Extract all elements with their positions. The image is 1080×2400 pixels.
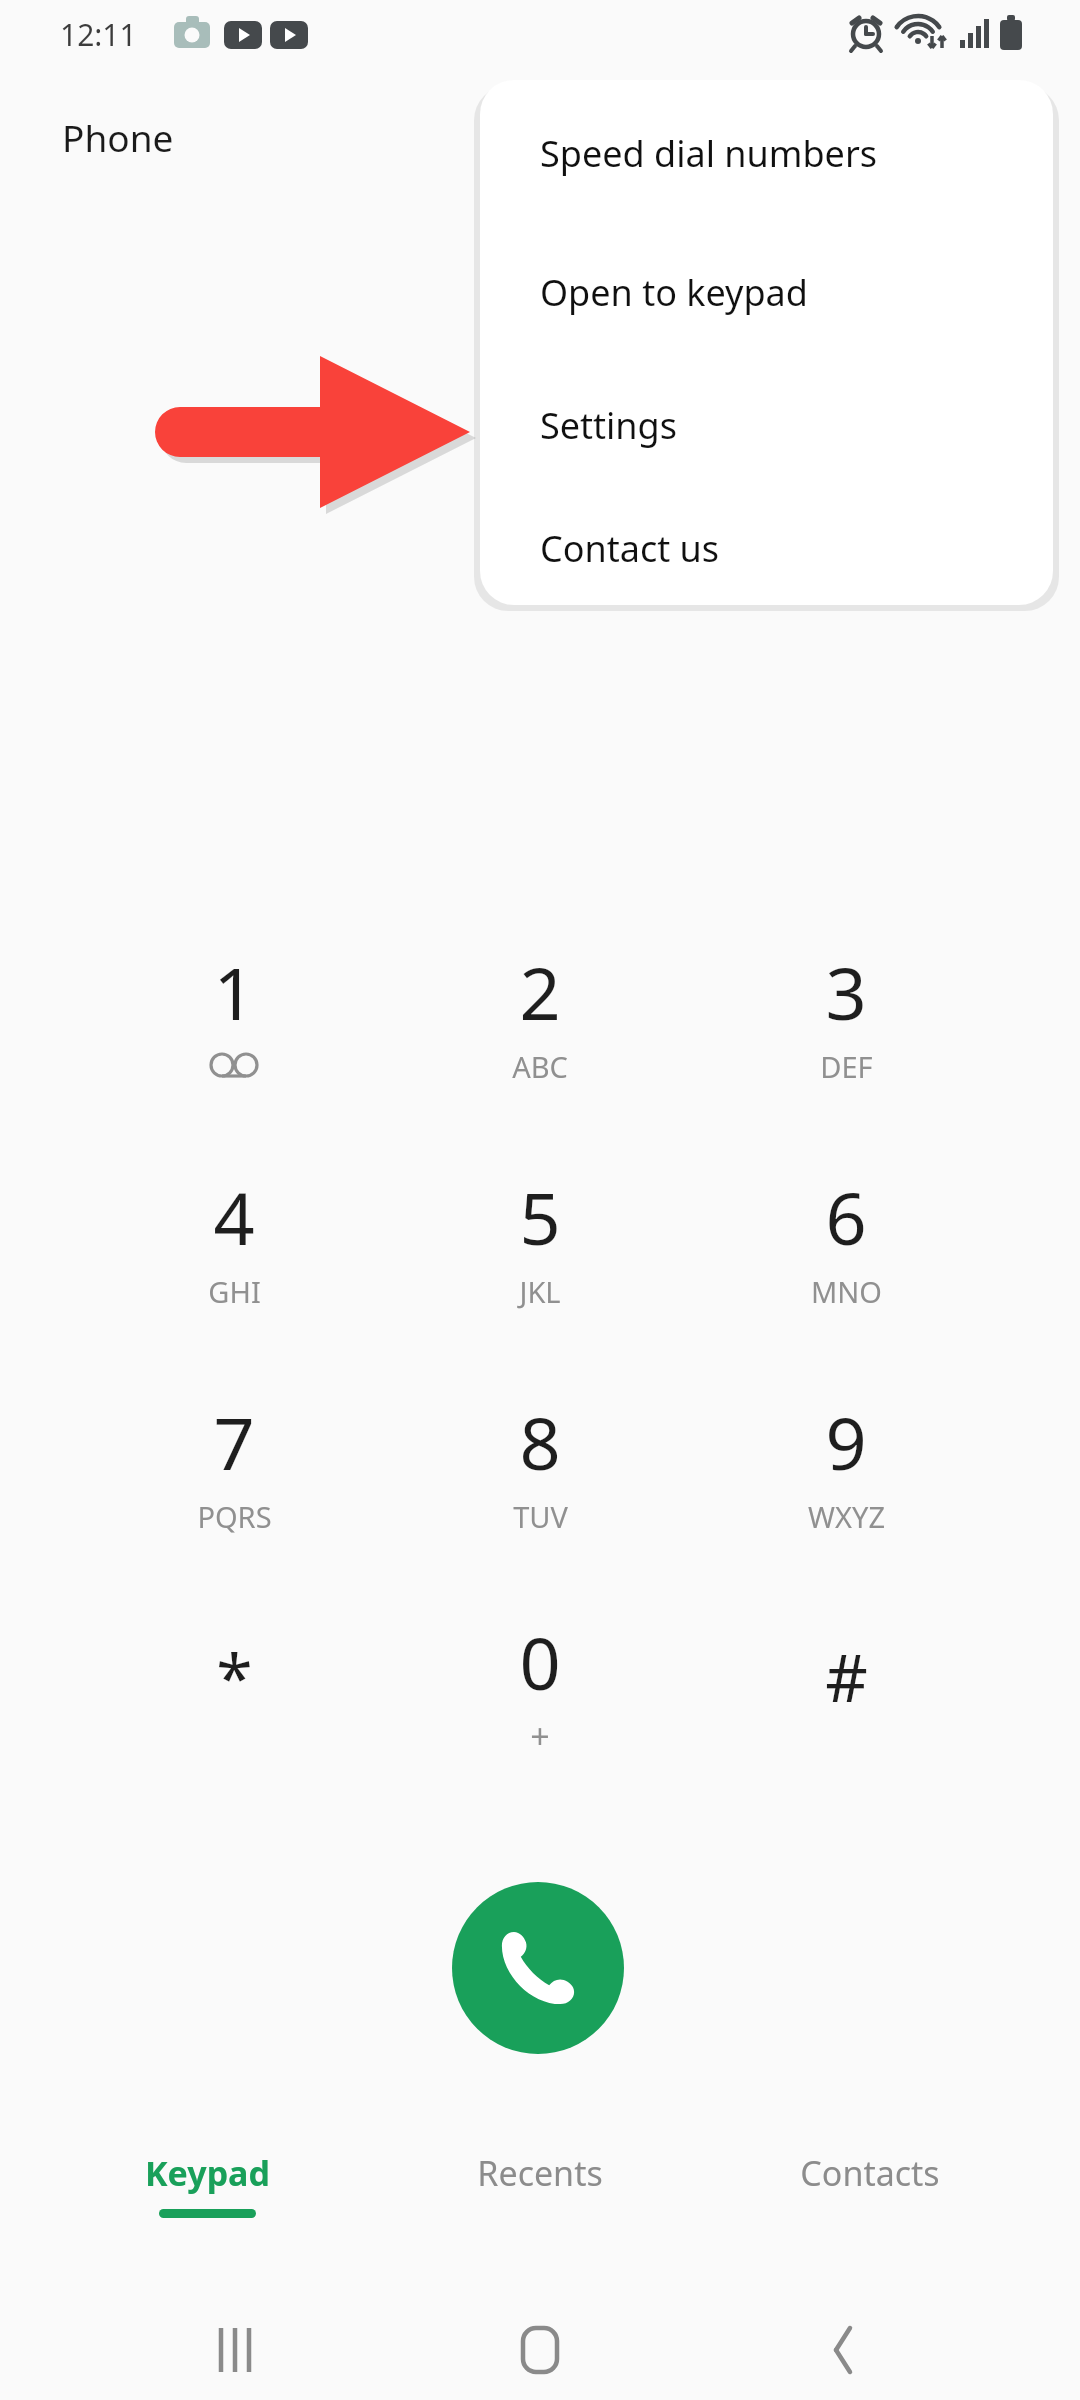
staticText: Phone xyxy=(62,112,174,162)
button[interactable]: Back xyxy=(765,2300,925,2400)
staticText: DEF xyxy=(820,1047,873,1086)
staticText: TUV xyxy=(513,1497,568,1536)
button[interactable]: Call xyxy=(452,1882,624,2054)
staticText: 3 xyxy=(825,943,867,1041)
button[interactable]: Open to keypad xyxy=(480,226,1053,359)
staticText: 2 xyxy=(519,943,561,1041)
button[interactable]: 1 xyxy=(124,943,344,1118)
button[interactable]: 6 xyxy=(736,1168,956,1343)
button[interactable]: 8 xyxy=(430,1393,650,1568)
staticText: 4 xyxy=(213,1168,255,1266)
staticText: 6 xyxy=(825,1168,867,1266)
other: Pointer arrow xyxy=(140,340,490,530)
button[interactable]: Home xyxy=(460,2300,620,2400)
staticText: 1 xyxy=(213,943,255,1041)
staticText: Contacts xyxy=(800,2150,940,2196)
staticText: JKL xyxy=(519,1272,561,1311)
staticText: Speed dial numbers xyxy=(540,129,877,178)
button[interactable]: Contacts xyxy=(720,2150,1020,2280)
button[interactable]: 4 xyxy=(124,1168,344,1343)
button[interactable]: * xyxy=(124,1613,344,1788)
staticText: ABC xyxy=(512,1047,568,1086)
button[interactable]: Speed dial numbers xyxy=(480,80,1053,226)
staticText: 9 xyxy=(825,1393,867,1491)
button[interactable]: 2 xyxy=(430,943,650,1118)
staticText: 7 xyxy=(213,1393,255,1491)
staticText: 8 xyxy=(519,1393,561,1491)
button[interactable]: 9 xyxy=(736,1393,956,1568)
staticText: # xyxy=(825,1631,868,1721)
staticText: * xyxy=(216,1631,253,1721)
button[interactable]: 5 xyxy=(430,1168,650,1343)
button[interactable]: Keypad xyxy=(57,2150,357,2280)
staticText: Recents xyxy=(477,2150,603,2196)
staticText: 0 xyxy=(519,1613,561,1711)
button[interactable]: Recent apps xyxy=(155,2300,315,2400)
button[interactable]: # xyxy=(736,1613,956,1788)
button[interactable]: Settings xyxy=(480,359,1053,492)
staticText: 5 xyxy=(519,1168,561,1266)
staticText: GHI xyxy=(208,1272,261,1311)
staticText: Open to keypad xyxy=(540,268,808,317)
staticText: Keypad xyxy=(145,2150,270,2196)
staticText: + xyxy=(530,1713,550,1759)
button[interactable]: 0 xyxy=(430,1613,650,1788)
staticText: Contact us xyxy=(540,524,720,573)
staticText: Settings xyxy=(540,401,677,450)
staticText: PQRS xyxy=(197,1497,272,1536)
staticText: WXYZ xyxy=(808,1497,885,1536)
button[interactable]: 7 xyxy=(124,1393,344,1568)
button[interactable]: Recents xyxy=(390,2150,690,2280)
button[interactable]: 3 xyxy=(736,943,956,1118)
staticText: 12:11 xyxy=(60,14,137,55)
staticText: MNO xyxy=(811,1272,882,1311)
button[interactable]: Contact us xyxy=(480,492,1053,605)
